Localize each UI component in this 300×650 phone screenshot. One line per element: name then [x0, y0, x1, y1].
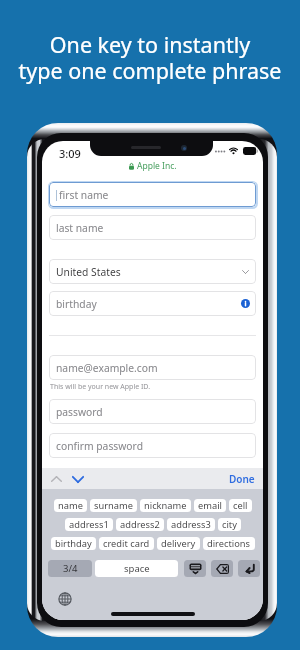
staticText: birthday — [55, 537, 92, 550]
button[interactable]: Change keyboard — [57, 591, 73, 607]
button[interactable]: password — [49, 399, 256, 424]
staticText: password — [56, 405, 103, 419]
button[interactable]: United States — [49, 259, 256, 284]
button[interactable]: cell — [229, 499, 252, 512]
button[interactable]: Return — [238, 560, 260, 577]
staticText: name@example.com — [56, 361, 158, 375]
staticText: name — [58, 499, 83, 512]
button[interactable]: delivery — [157, 537, 200, 550]
button[interactable]: last name — [49, 215, 256, 240]
button[interactable]: space — [95, 560, 178, 577]
staticText: address1 — [69, 518, 109, 531]
staticText: 3:09 — [59, 146, 81, 161]
staticText: One key to instantly type one complete p… — [0, 30, 300, 86]
button[interactable]: nickname — [140, 499, 191, 512]
button[interactable]: address2 — [116, 518, 164, 531]
button[interactable]: Backspace — [211, 560, 233, 577]
staticText: last name — [56, 221, 104, 235]
staticText: address2 — [120, 518, 160, 531]
button[interactable]: address1 — [65, 518, 113, 531]
staticText: surname — [94, 499, 133, 512]
button[interactable]: surname — [90, 499, 137, 512]
button[interactable]: city — [218, 518, 241, 531]
staticText: birthday — [56, 297, 97, 311]
button[interactable]: name@example.com — [49, 355, 256, 380]
staticText: cell — [233, 499, 248, 512]
staticText: space — [124, 562, 150, 575]
button[interactable]: first name — [49, 182, 256, 207]
staticText: Apple Inc. — [137, 160, 177, 172]
staticText: This will be your new Apple ID. — [50, 382, 151, 392]
button[interactable]: birthday — [51, 537, 96, 550]
staticText: delivery — [161, 537, 196, 550]
staticText: first name — [59, 188, 109, 202]
staticText: directions — [207, 537, 251, 550]
staticText: Done — [229, 472, 255, 486]
button[interactable]: email — [194, 499, 226, 512]
button[interactable]: name — [54, 499, 87, 512]
button[interactable]: Next field — [68, 469, 88, 489]
button[interactable]: directions — [203, 537, 255, 550]
staticText: credit card — [103, 537, 150, 550]
staticText: address3 — [171, 518, 211, 531]
button[interactable]: 3/4 — [48, 560, 92, 577]
staticText: confirm password — [56, 439, 143, 453]
staticText: email — [198, 499, 222, 512]
button[interactable]: Done — [221, 469, 263, 489]
button[interactable]: birthday — [49, 291, 256, 316]
button[interactable]: credit card — [99, 537, 154, 550]
button[interactable]: Hide keyboard — [184, 560, 206, 577]
staticText: nickname — [144, 499, 187, 512]
staticText: 3/4 — [63, 562, 78, 575]
button[interactable]: address3 — [167, 518, 215, 531]
button[interactable]: Previous field — [46, 469, 66, 489]
button[interactable]: confirm password — [49, 433, 256, 458]
staticText: city — [222, 518, 237, 531]
staticText: United States — [56, 265, 121, 279]
